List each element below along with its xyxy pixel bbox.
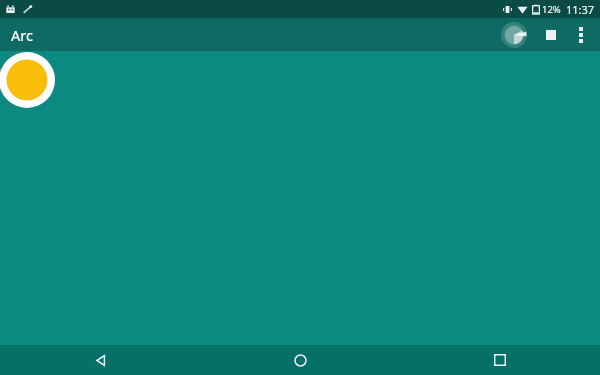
staticText: 12% [542,3,561,16]
button[interactable]: Stop [536,20,566,50]
staticText: 11:37 [566,2,595,17]
button[interactable]: Back [0,345,200,375]
button[interactable]: More options [568,22,594,48]
button[interactable]: Recent apps [400,345,600,375]
button[interactable]: Record [0,52,55,108]
staticText: Arc [11,25,33,45]
button[interactable]: Home [200,345,400,375]
button[interactable]: Arc view [499,20,529,50]
